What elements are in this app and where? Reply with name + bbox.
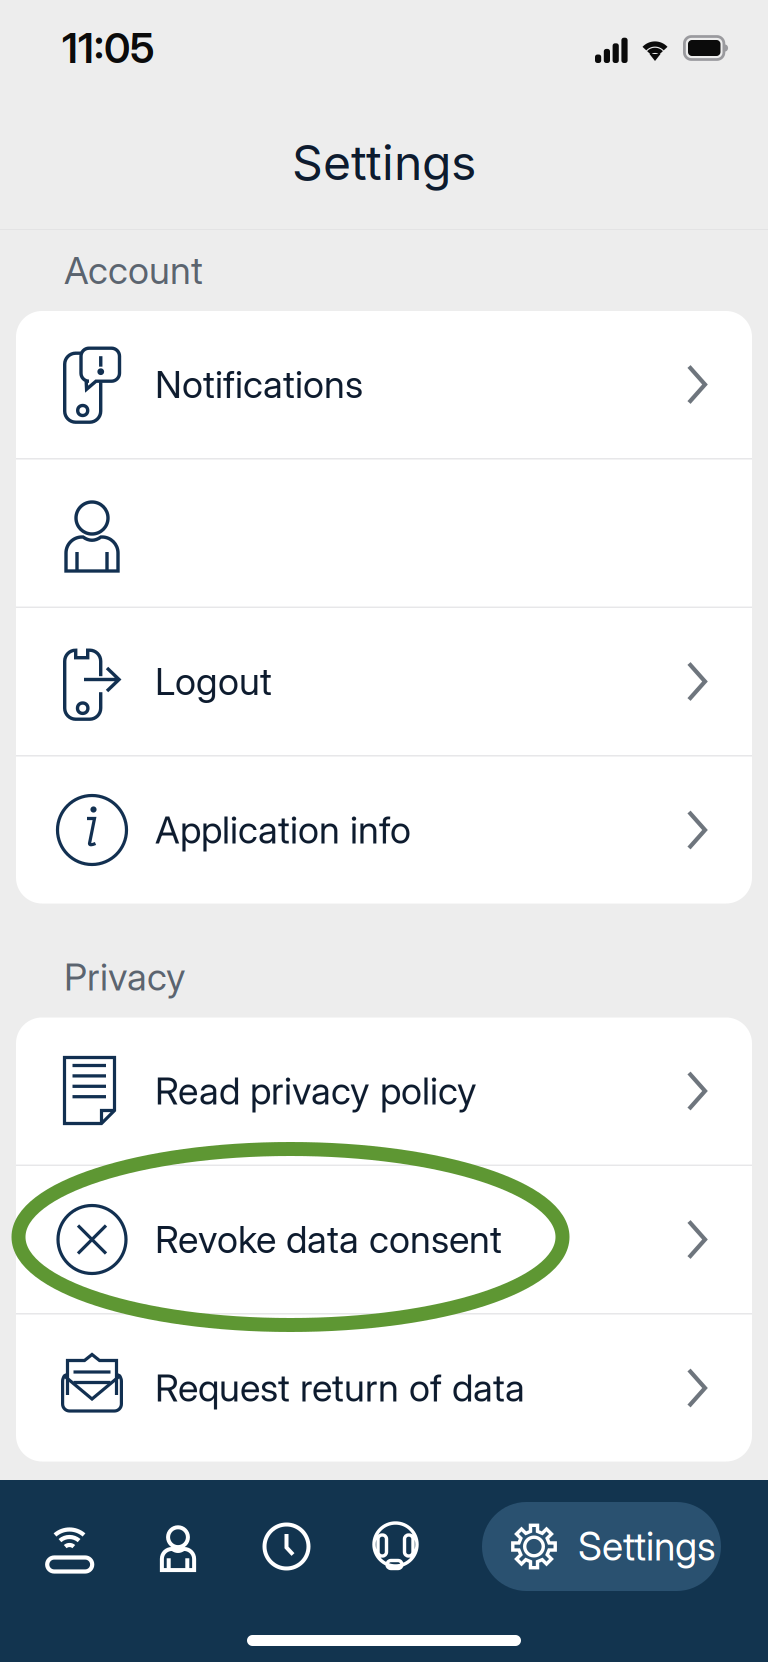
button[interactable]: Settings [482,1502,721,1591]
staticText: Settings [292,133,476,192]
button[interactable]: Request return of data [16,1314,752,1461]
button[interactable]: Application info [16,756,752,903]
button[interactable] [16,459,752,606]
staticText: Logout [155,659,272,704]
button[interactable]: Notifications [16,311,752,458]
staticText: Application info [155,807,411,853]
staticText: Account [64,248,203,293]
staticText: Settings [578,1523,716,1570]
staticText: 11:05 [62,23,155,73]
button[interactable]: Internet [16,1502,124,1591]
staticText: Notifications [155,362,363,407]
staticText: Read privacy policy [155,1068,477,1114]
button[interactable]: Revoke data consent [16,1166,752,1313]
staticText: Revoke data consent [155,1217,502,1262]
staticText: Request return of data [155,1365,525,1411]
button[interactable]: History [232,1502,341,1591]
button[interactable]: Profile [124,1502,232,1591]
button[interactable]: Logout [16,608,752,755]
button[interactable]: Read privacy policy [16,1017,752,1164]
button[interactable]: Support [341,1502,450,1591]
staticText: Privacy [64,954,186,1000]
